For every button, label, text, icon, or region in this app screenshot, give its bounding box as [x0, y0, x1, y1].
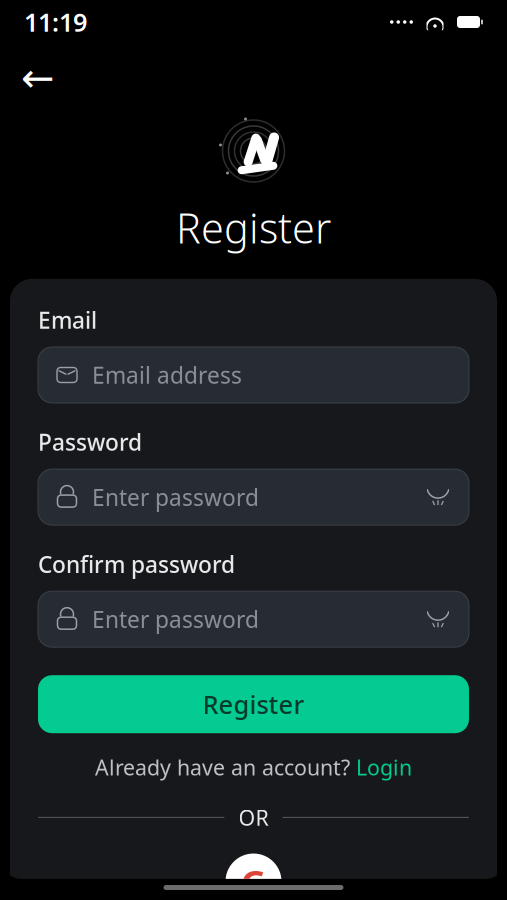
staticText: Password: [38, 427, 142, 457]
button[interactable]: Enter password: [38, 469, 469, 525]
button[interactable]: Back: [16, 56, 60, 100]
button[interactable]: Email address: [38, 347, 469, 403]
button[interactable]: Already have an account?: [38, 753, 469, 781]
staticText: Confirm password: [38, 549, 235, 579]
staticText: Register: [176, 200, 331, 255]
button[interactable]: Enter password: [38, 591, 469, 647]
staticText: Register: [202, 687, 304, 721]
staticText: Already have an account?: [95, 753, 350, 781]
staticText: OR: [238, 803, 268, 831]
staticText: G: [241, 858, 266, 900]
staticText: Email: [38, 305, 97, 335]
button[interactable]: Register: [38, 675, 469, 733]
staticText: 11:19: [24, 5, 87, 39]
staticText: ←: [21, 55, 55, 101]
staticText: Enter password: [92, 604, 259, 634]
button[interactable]: Continue with Google: [225, 853, 281, 900]
staticText: Enter password: [92, 482, 259, 512]
staticText: Login: [356, 753, 412, 781]
staticText: Email address: [92, 360, 242, 390]
